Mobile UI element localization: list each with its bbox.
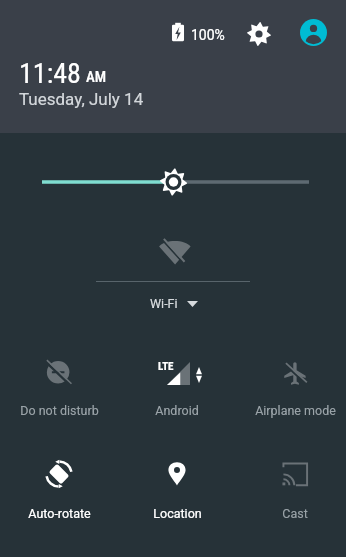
button[interactable]: Do not disturb <box>0 359 118 425</box>
button[interactable]: LTE <box>118 359 236 425</box>
staticText: Do not disturb <box>20 403 99 418</box>
button[interactable]: Location <box>118 460 236 526</box>
button[interactable]: Settings <box>243 18 274 49</box>
staticText: LTE <box>158 360 174 373</box>
staticText: AM <box>86 68 107 86</box>
staticText: Android <box>155 403 199 418</box>
staticText: Auto-rotate <box>28 506 91 521</box>
button[interactable]: User account <box>298 17 329 48</box>
button[interactable]: Auto-rotate <box>0 460 118 526</box>
button[interactable]: Wi-Fi <box>88 234 258 314</box>
staticText: Cast <box>282 506 308 521</box>
staticText: Tuesday, July 14 <box>19 89 144 109</box>
staticText: 11:48 <box>19 57 81 90</box>
button[interactable]: Cast <box>236 460 346 526</box>
button[interactable]: Airplane mode <box>236 359 346 425</box>
button[interactable]: Brightness <box>0 162 346 202</box>
staticText: 100% <box>191 27 225 43</box>
staticText: Location <box>153 506 202 521</box>
staticText: Airplane mode <box>255 403 336 418</box>
staticText: Wi-Fi <box>150 296 178 311</box>
